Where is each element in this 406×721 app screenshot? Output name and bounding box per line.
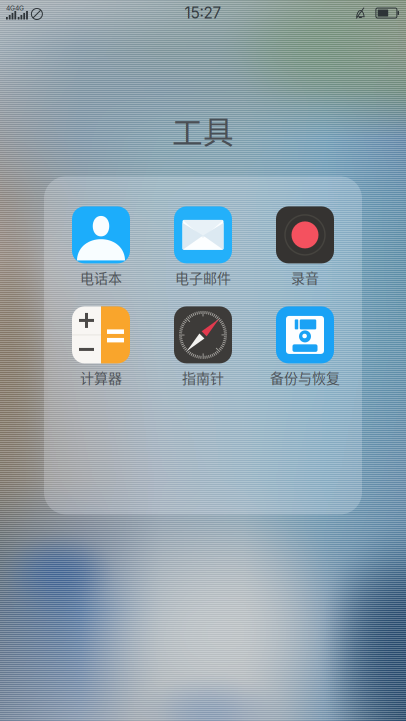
staticText: 备份与恢复 [270, 367, 340, 388]
staticText: 电子邮件 [175, 267, 231, 288]
staticText: 工具 [172, 108, 234, 152]
button[interactable]: 电话本 [50, 206, 152, 284]
button[interactable]: 计算器 [50, 306, 152, 384]
staticText: 指南针 [182, 367, 224, 388]
button[interactable]: 录音 [254, 206, 356, 284]
button[interactable]: 电子邮件 [152, 206, 254, 284]
staticText: 电话本 [80, 267, 122, 288]
staticText: 15:27 [184, 4, 221, 22]
button[interactable]: 指南针 [152, 306, 254, 384]
staticText: 计算器 [80, 367, 122, 388]
staticText: 录音 [291, 267, 319, 288]
staticText: 4G4G [6, 4, 24, 12]
button[interactable]: 备份与恢复 [254, 306, 356, 384]
